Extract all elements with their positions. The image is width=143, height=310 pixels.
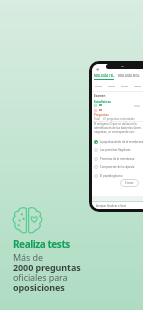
button[interactable]: BIOLOGÍA MOL. (118, 74, 141, 78)
staticText: Proteínas de la membrana plasmática (100, 157, 143, 161)
button[interactable]: Componente de la cápsula (94, 162, 143, 171)
staticText: Realiza tests (13, 237, 70, 251)
staticText: Examen (94, 94, 106, 98)
staticText: BIOLOGÍA CEL. (94, 74, 115, 78)
button[interactable]: Proteínas de la membrana plasmática (94, 154, 143, 163)
staticText: Preguntas (94, 113, 109, 117)
button[interactable]: El peptidoglicano (94, 171, 143, 180)
staticText: Más de 2000 preguntas oficiales para opo… (13, 251, 81, 294)
button[interactable]: Lipopolisacárido de la membrana externa (94, 137, 143, 146)
staticText: Estadísticas (94, 100, 111, 104)
staticText: 41 preguntas contestadas (103, 117, 135, 121)
other: Brain (12, 207, 43, 234)
staticText: Total (94, 117, 100, 121)
button[interactable]: BIOLOGÍA CEL. (94, 74, 115, 80)
staticText: Las proteínas flagelares (100, 148, 131, 152)
button[interactable]: Back (95, 67, 100, 72)
staticText: El antígeno O que se utiliza en la ident… (94, 122, 143, 134)
staticText: Enviar (125, 181, 134, 185)
button[interactable]: Enviar (120, 179, 139, 187)
staticText: El peptidoglicano (100, 174, 123, 178)
staticText: Lipopolisacárido de la membrana externa (100, 140, 143, 144)
button[interactable]: Las proteínas flagelares (94, 145, 143, 154)
button[interactable]: Aceptar finalizar el test (92, 202, 143, 209)
staticText: Componente de la cápsula (100, 165, 135, 169)
staticText: Aceptar finalizar el test (96, 204, 127, 208)
